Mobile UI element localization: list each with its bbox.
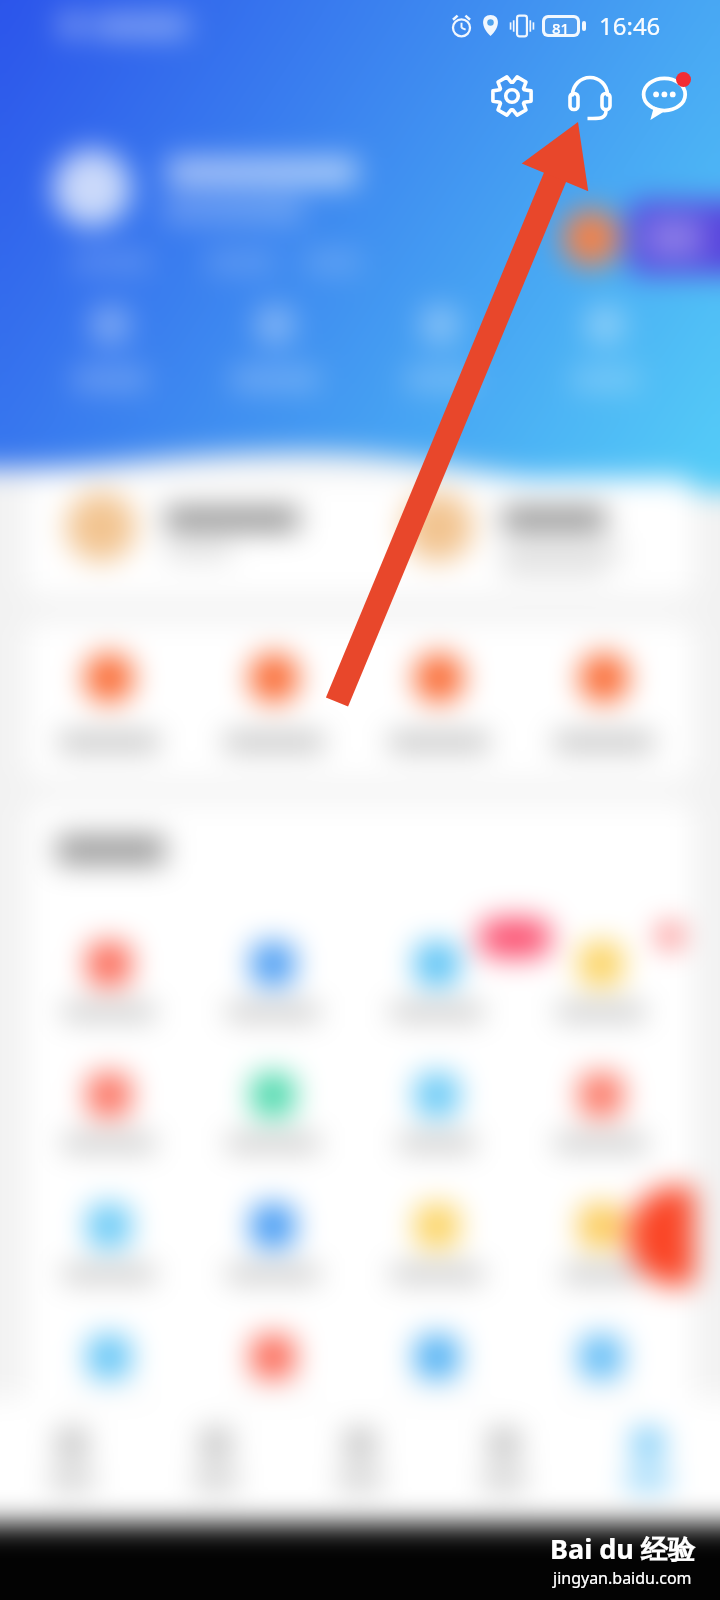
staticText: 81	[552, 18, 570, 34]
button[interactable]	[415, 942, 459, 986]
button[interactable]	[579, 653, 629, 703]
button[interactable]	[632, 1428, 664, 1460]
button[interactable]	[251, 942, 295, 986]
button[interactable]	[251, 1204, 295, 1248]
staticText: jingyan.baidu.com	[553, 1567, 692, 1589]
button[interactable]	[87, 1073, 131, 1117]
button[interactable]	[579, 1335, 623, 1379]
button[interactable]	[421, 306, 459, 344]
button[interactable]	[87, 942, 131, 986]
button[interactable]	[56, 1428, 88, 1460]
button[interactable]	[488, 1428, 520, 1460]
button[interactable]	[87, 1204, 131, 1248]
button[interactable]	[414, 653, 464, 703]
button[interactable]	[84, 653, 134, 703]
button[interactable]	[403, 492, 473, 562]
button[interactable]	[415, 1073, 459, 1117]
staticText: 16:46	[599, 9, 661, 42]
staticText: Bai du 经验	[550, 1530, 695, 1567]
button[interactable]	[415, 1335, 459, 1379]
button[interactable]	[251, 1073, 295, 1117]
button[interactable]	[579, 1204, 623, 1248]
button[interactable]	[586, 306, 624, 344]
button[interactable]	[249, 653, 299, 703]
button[interactable]	[415, 1204, 459, 1248]
button[interactable]	[200, 1428, 232, 1460]
button[interactable]: Customer service	[565, 71, 615, 121]
button[interactable]: Settings	[487, 71, 537, 121]
button[interactable]	[256, 306, 294, 344]
button[interactable]	[91, 306, 129, 344]
button[interactable]	[66, 492, 136, 562]
button[interactable]: Messages	[641, 70, 693, 122]
button[interactable]	[251, 1335, 295, 1379]
button[interactable]	[344, 1428, 376, 1460]
button[interactable]	[87, 1335, 131, 1379]
button[interactable]	[628, 201, 720, 275]
button[interactable]	[579, 942, 623, 986]
button[interactable]	[579, 1073, 623, 1117]
